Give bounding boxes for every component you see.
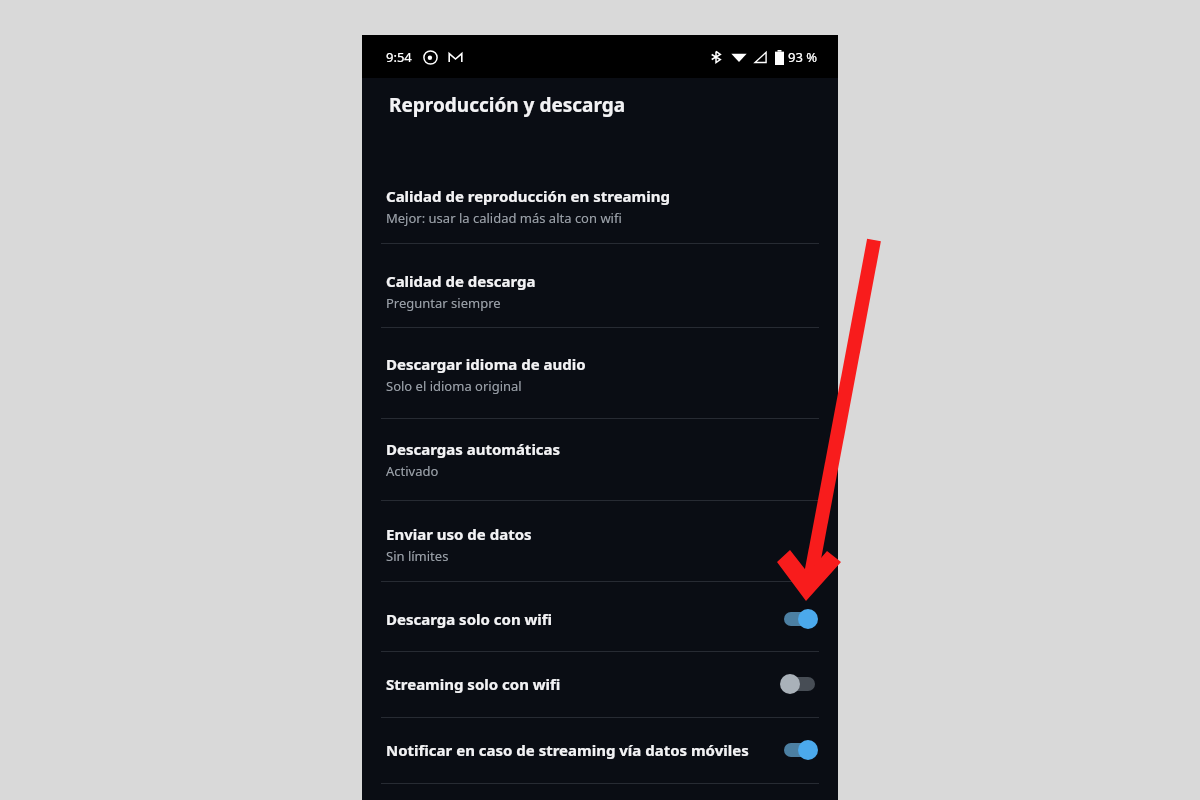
button[interactable]: Descargar idioma de audio — [362, 346, 838, 409]
staticText: Notificar en caso de streaming vía datos… — [386, 740, 772, 760]
button[interactable]: Calidad de reproducción en streaming — [362, 178, 838, 241]
staticText: Mejor: usar la calidad más alta con wifi — [386, 209, 622, 227]
staticText: 93 % — [788, 48, 818, 66]
button[interactable]: Notificar en caso de streaming vía datos… — [362, 717, 838, 783]
button[interactable]: Streaming solo con wifi — [362, 651, 838, 717]
staticText: Activado — [386, 462, 439, 480]
staticText: Sin límites — [386, 547, 449, 565]
staticText: Descarga solo con wifi — [386, 609, 772, 629]
button[interactable]: Enviar uso de datos — [362, 516, 838, 579]
staticText: Enviar uso de datos — [386, 524, 532, 544]
staticText: Descargas automáticas — [386, 439, 561, 459]
other: On — [780, 608, 818, 630]
staticText: Calidad de reproducción en streaming — [386, 186, 670, 206]
button[interactable]: Calidad de descarga — [362, 263, 838, 326]
button[interactable]: Descarga solo con wifi — [362, 587, 838, 651]
staticText: 9:54 — [386, 48, 412, 66]
staticText: Preguntar siempre — [386, 294, 501, 312]
other: On — [780, 739, 818, 761]
staticText: Calidad de descarga — [386, 271, 536, 291]
staticText: Streaming solo con wifi — [386, 674, 772, 694]
staticText: Descargar idioma de audio — [386, 354, 586, 374]
staticText: Solo el idioma original — [386, 377, 522, 395]
staticText: Reproducción y descarga — [389, 92, 626, 118]
button[interactable]: Descargas automáticas — [362, 431, 838, 494]
other: Off — [780, 673, 818, 695]
